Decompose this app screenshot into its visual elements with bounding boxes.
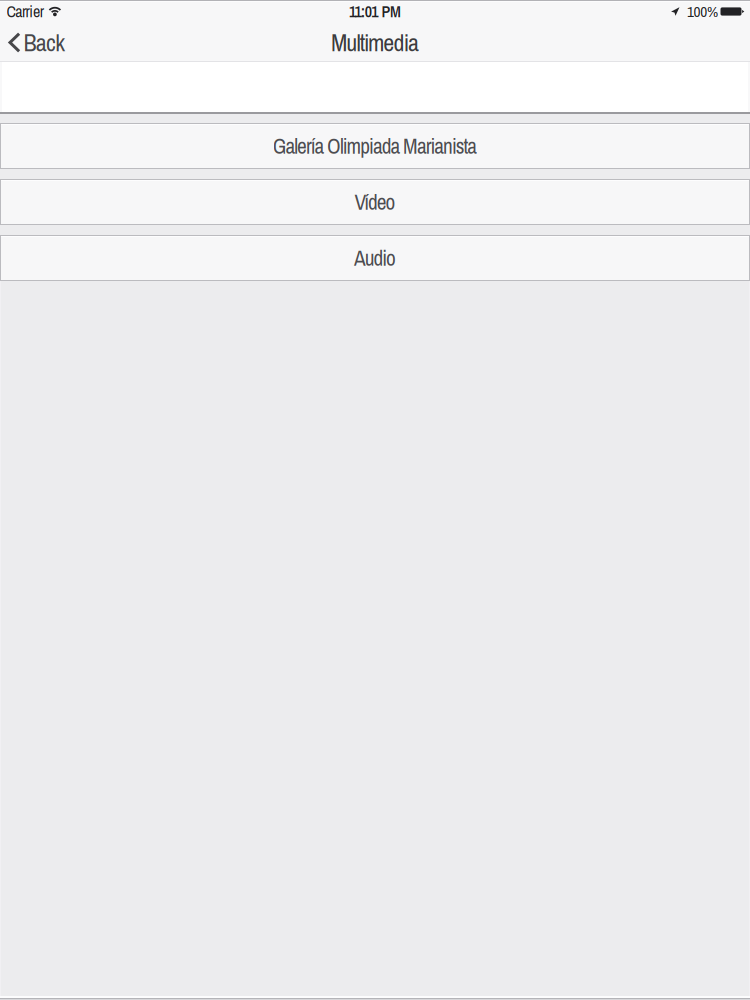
staticText: 100% — [687, 1, 718, 22]
staticText: Carrier — [6, 1, 44, 22]
button[interactable]: Audio — [0, 235, 750, 281]
staticText: 11:01 PM — [349, 1, 401, 22]
staticText: Audio — [354, 244, 396, 272]
staticText: Back — [24, 26, 65, 59]
button[interactable]: Vídeo — [0, 179, 750, 225]
staticText: Vídeo — [354, 188, 396, 216]
button[interactable]: Back — [0, 22, 77, 63]
staticText: Galería Olimpiada Marianista — [273, 132, 477, 160]
staticText: Multimedia — [331, 26, 419, 59]
button[interactable]: Galería Olimpiada Marianista — [0, 123, 750, 169]
